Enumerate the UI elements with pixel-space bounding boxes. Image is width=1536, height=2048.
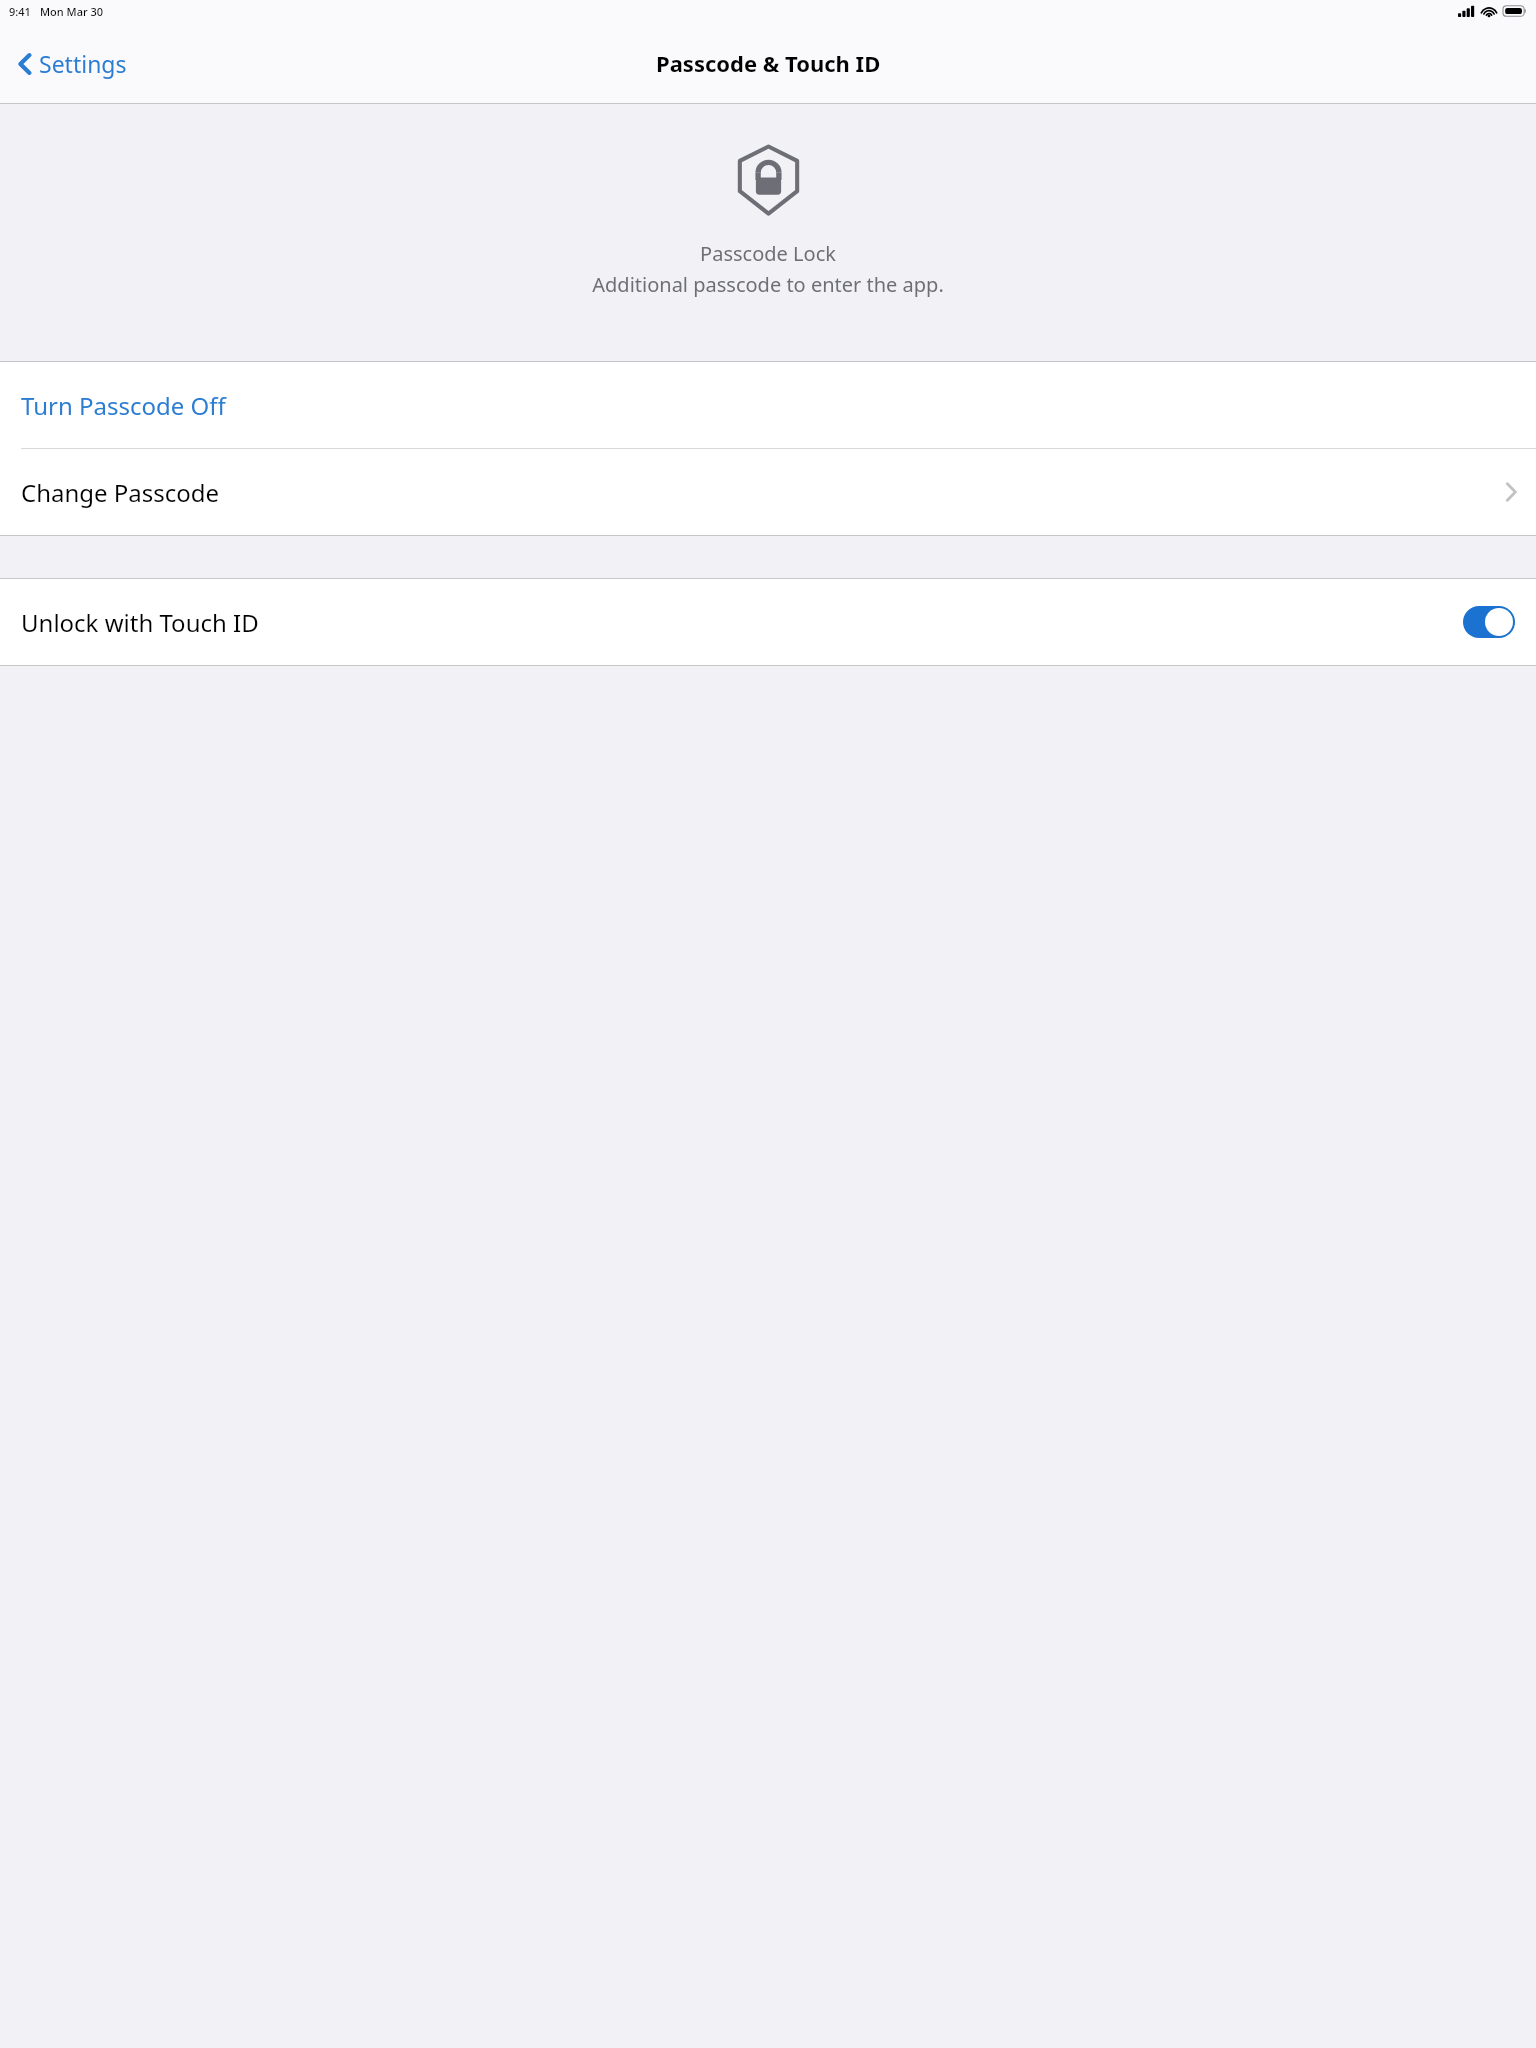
staticText: Change Passcode — [21, 476, 1505, 509]
staticText: Mon Mar 30 — [40, 4, 104, 19]
staticText: Turn Passcode Off — [21, 389, 226, 422]
button[interactable]: Change Passcode — [0, 449, 1536, 535]
staticText: Passcode & Touch ID — [656, 48, 881, 78]
staticText: Passcode Lock — [700, 240, 836, 267]
staticText: Unlock with Touch ID — [21, 606, 1463, 639]
button[interactable]: Unlock with Touch ID toggle — [1463, 606, 1515, 638]
button[interactable]: Settings — [14, 42, 131, 85]
staticText: Additional passcode to enter the app. — [592, 271, 944, 298]
staticText: 9:41 — [9, 4, 31, 19]
staticText: Settings — [39, 48, 127, 79]
button[interactable]: Turn Passcode Off — [0, 362, 1536, 448]
button[interactable]: Unlock with Touch ID — [0, 579, 1536, 665]
